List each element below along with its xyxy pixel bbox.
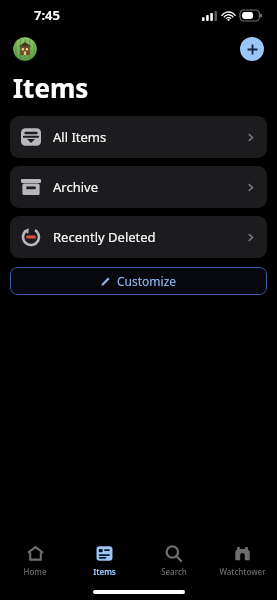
staticText: Search: [161, 566, 187, 577]
staticText: Recently Deleted: [53, 228, 156, 246]
button[interactable]: Customize: [10, 267, 267, 295]
staticText: 7:45: [34, 6, 60, 24]
button[interactable]: Recently Deleted: [10, 216, 267, 258]
button[interactable]: Archive: [10, 166, 267, 208]
staticText: Items: [93, 566, 116, 577]
button[interactable]: Home: [0, 540, 70, 581]
button[interactable]: All Items: [10, 116, 267, 158]
staticText: Items: [13, 70, 89, 105]
staticText: Customize: [117, 273, 177, 289]
staticText: Archive: [53, 178, 98, 196]
staticText: All Items: [53, 128, 107, 146]
button[interactable]: Search: [139, 540, 208, 581]
button[interactable]: Add item: [240, 37, 264, 61]
button[interactable]: Watchtower: [208, 540, 277, 581]
staticText: Watchtower: [219, 566, 266, 577]
button[interactable]: Profile: [13, 37, 37, 61]
staticText: Home: [23, 566, 47, 577]
button[interactable]: Items: [70, 540, 139, 581]
